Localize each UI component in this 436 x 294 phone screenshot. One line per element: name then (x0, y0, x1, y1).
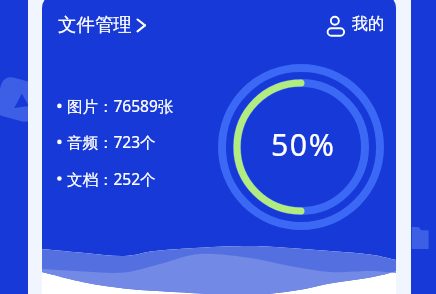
button[interactable]: 我的 (352, 14, 384, 34)
staticText: 50% (271, 124, 336, 165)
button[interactable]: 我的 (322, 10, 348, 38)
staticText: 图片：76589张 (67, 95, 174, 116)
staticText: 文档：252个 (67, 168, 156, 189)
button[interactable]: 文件管理 (58, 13, 132, 36)
staticText: 音频：723个 (67, 131, 156, 152)
